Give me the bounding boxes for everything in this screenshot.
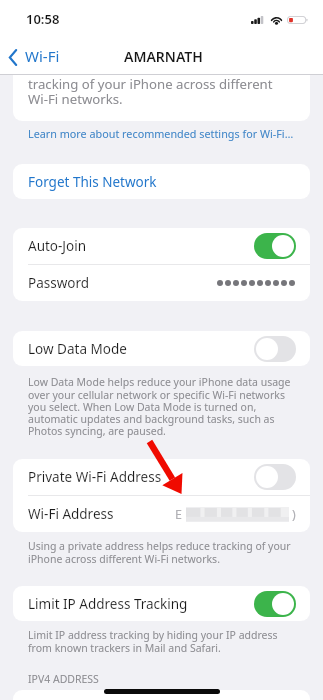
staticText: Wi-Fi Address <box>28 505 114 523</box>
staticText: Low Data Mode <box>28 340 127 358</box>
staticText: Password <box>28 274 90 292</box>
staticText: E <box>175 506 182 523</box>
button[interactable]: Forget This Network <box>13 164 310 199</box>
button[interactable]: Private Wi-Fi Address <box>254 464 296 490</box>
staticText: Using a private address helps reduce tra… <box>28 539 296 566</box>
staticText: Wi-Fi <box>25 46 60 66</box>
other: Annotation arrow <box>0 0 323 700</box>
button[interactable]: Limit IP Address Tracking <box>13 586 310 621</box>
button[interactable]: Auto-Join <box>254 233 296 259</box>
button[interactable]: Password <box>13 265 310 301</box>
staticText: Limit IP address tracking by hiding your… <box>28 628 296 655</box>
staticText: Low Data Mode helps reduce your iPhone d… <box>28 375 296 438</box>
button[interactable]: Low Data Mode <box>254 336 296 362</box>
button[interactable]: Auto-Join <box>13 228 310 264</box>
staticText: AMARNATH <box>124 47 203 66</box>
staticText: Limit IP Address Tracking <box>28 595 188 613</box>
staticText: Private Wi-Fi Address <box>28 468 162 486</box>
staticText: Auto-Join <box>28 237 87 255</box>
staticText: Learn more about recommended settings fo… <box>28 126 294 141</box>
staticText: ) <box>292 506 296 523</box>
staticText: 10:58 <box>26 10 60 28</box>
button[interactable]: Wi-Fi Address <box>13 496 310 532</box>
staticText: Forget This Network <box>28 173 157 191</box>
staticText: tracking of your iPhone across different… <box>28 75 273 108</box>
button[interactable]: Back to Wi-Fi <box>0 41 68 69</box>
staticText: IPV4 ADDRESS <box>28 672 99 686</box>
button[interactable]: Limit IP Address Tracking <box>254 591 296 617</box>
button[interactable]: Low Data Mode <box>13 331 310 366</box>
button[interactable]: Private Wi-Fi Address <box>13 459 310 495</box>
button[interactable]: Learn more about recommended settings fo… <box>0 126 294 141</box>
